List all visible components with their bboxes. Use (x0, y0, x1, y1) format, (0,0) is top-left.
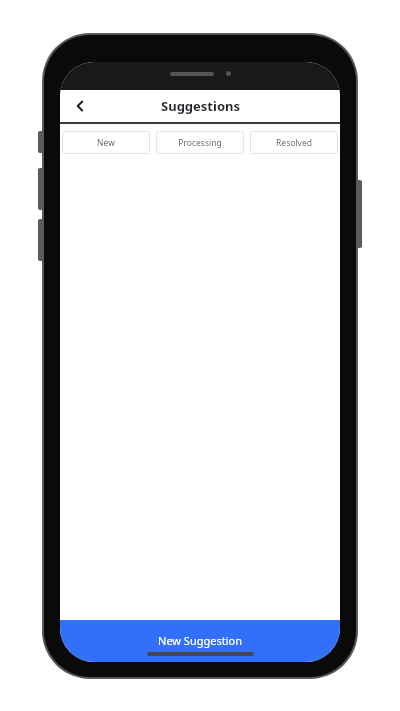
staticText: Processing (178, 137, 222, 149)
button[interactable]: New Suggestion (60, 620, 340, 662)
button[interactable]: Back (66, 92, 94, 120)
staticText: Suggestions (161, 97, 240, 115)
staticText: Resolved (276, 137, 312, 149)
button[interactable]: New (62, 131, 150, 154)
button[interactable]: Resolved (250, 131, 338, 154)
button[interactable]: Processing (156, 131, 244, 154)
staticText: New (97, 137, 115, 149)
staticText: New Suggestion (158, 633, 242, 648)
